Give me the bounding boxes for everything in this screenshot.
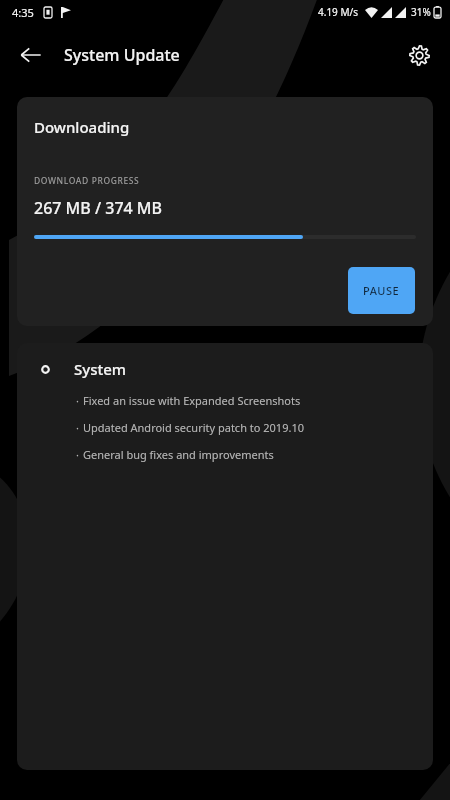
staticText: System xyxy=(74,359,127,379)
staticText: System Update xyxy=(64,44,180,66)
staticText: 31% xyxy=(411,5,431,19)
staticText: 4:35 xyxy=(12,5,34,20)
staticText: DOWNLOAD PROGRESS xyxy=(34,175,140,187)
staticText: · xyxy=(76,393,79,408)
button[interactable]: PAUSE xyxy=(348,267,415,314)
staticText: 267 MB / 374 MB xyxy=(34,197,163,219)
staticText: General bug fixes and improvements xyxy=(83,447,274,462)
staticText: Updated Android security patch to 2019.1… xyxy=(83,420,304,435)
staticText: Downloading xyxy=(34,117,130,137)
button[interactable]: Downloading xyxy=(17,97,433,326)
button[interactable]: Settings xyxy=(397,33,441,77)
staticText: PAUSE xyxy=(363,283,400,298)
button[interactable]: System xyxy=(17,343,433,770)
staticText: · xyxy=(76,447,79,462)
staticText: · xyxy=(76,420,79,435)
staticText: Fixed an issue with Expanded Screenshots xyxy=(83,393,301,408)
button[interactable]: Back xyxy=(9,33,53,77)
staticText: 4.19 M/s xyxy=(318,5,359,19)
